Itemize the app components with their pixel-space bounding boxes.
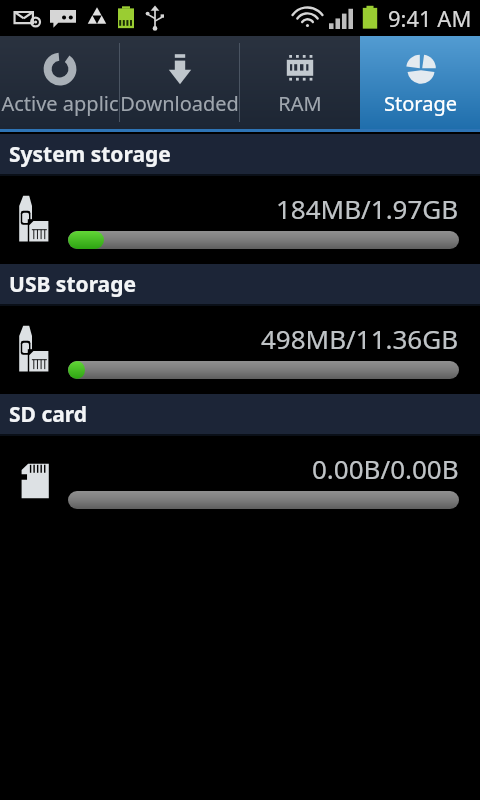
staticText: 498MB/11.36GB — [261, 321, 459, 356]
button[interactable]: SD card — [0, 436, 480, 524]
other: System storage — [16, 193, 56, 247]
button[interactable]: Downloaded — [120, 36, 239, 129]
button[interactable]: Active applic — [0, 36, 119, 129]
other: SD card — [16, 453, 56, 507]
staticText: RAM — [278, 90, 322, 117]
staticText: SD card — [9, 400, 88, 429]
staticText: Downloaded — [120, 90, 239, 117]
staticText: USB storage — [9, 270, 137, 299]
button[interactable]: System storage — [0, 176, 480, 264]
button[interactable]: Storage — [360, 36, 480, 129]
staticText: Storage — [384, 90, 457, 117]
staticText: Active applic — [1, 90, 119, 117]
staticText: System storage — [9, 140, 171, 169]
button[interactable]: USB storage — [0, 306, 480, 394]
staticText: 0.00B/0.00B — [312, 451, 459, 486]
other: USB storage — [16, 323, 56, 377]
button[interactable]: RAM — [240, 36, 360, 129]
staticText: 9:41 AM — [388, 3, 472, 33]
staticText: 184MB/1.97GB — [276, 191, 459, 226]
